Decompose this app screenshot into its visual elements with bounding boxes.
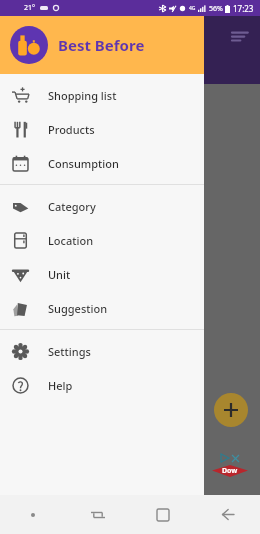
button[interactable]: Products bbox=[0, 112, 204, 146]
staticText: Suggestion bbox=[48, 301, 108, 316]
staticText: Help bbox=[48, 378, 73, 393]
button[interactable]: Shopping list bbox=[0, 78, 204, 112]
button[interactable]: Recents bbox=[130, 495, 195, 534]
staticText: Best Before bbox=[58, 35, 145, 55]
button[interactable]: Unit bbox=[0, 257, 204, 291]
button[interactable]: Menu bbox=[0, 495, 65, 534]
staticText: 17:23 bbox=[233, 3, 254, 14]
staticText: Settings bbox=[48, 344, 91, 359]
button[interactable]: Switch apps bbox=[65, 495, 130, 534]
button[interactable]: Settings bbox=[0, 334, 204, 368]
staticText: Unit bbox=[48, 267, 71, 282]
button[interactable]: Add bbox=[214, 393, 248, 427]
button[interactable]: Help bbox=[0, 368, 204, 402]
staticText: Consumption bbox=[48, 156, 119, 171]
staticText: Shopping list bbox=[48, 88, 117, 103]
button[interactable]: Best Before bbox=[0, 16, 204, 74]
staticText: Products bbox=[48, 122, 95, 137]
button[interactable]: Suggestion bbox=[0, 291, 204, 325]
button[interactable]: Category bbox=[0, 189, 204, 223]
button[interactable]: Sort bbox=[228, 26, 250, 48]
staticText: EXPIRED bbox=[10, 66, 47, 78]
staticText: 4G bbox=[189, 5, 196, 12]
staticText: Location bbox=[48, 233, 94, 248]
button[interactable]: Consumption bbox=[0, 146, 204, 180]
staticText: Dow bbox=[222, 466, 238, 476]
button[interactable]: Location bbox=[0, 223, 204, 257]
staticText: 56% bbox=[209, 4, 223, 14]
staticText: Category bbox=[48, 199, 96, 214]
staticText: 21° bbox=[24, 3, 36, 13]
button[interactable]: Back bbox=[195, 495, 260, 534]
